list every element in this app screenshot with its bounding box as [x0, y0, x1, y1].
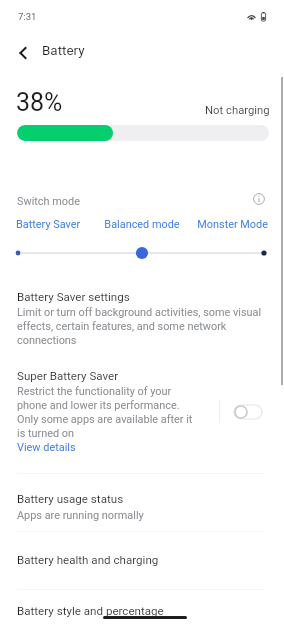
button[interactable]: Battery Saver settings — [0, 284, 284, 355]
staticText: Battery style and percentage — [17, 604, 164, 618]
staticText: Switch mode — [17, 195, 80, 208]
button[interactable]: Battery usage status — [0, 486, 284, 530]
button[interactable]: Battery Saver — [16, 218, 100, 231]
staticText: 38% — [16, 88, 63, 117]
button[interactable]: View details — [17, 441, 76, 454]
button[interactable]: Balanced mode — [100, 218, 184, 231]
staticText: Apps are running normally — [17, 509, 144, 522]
staticText: Restrict the functionality of your phone… — [17, 385, 201, 440]
staticText: 7:31 — [18, 11, 37, 22]
staticText: Battery usage status — [17, 492, 124, 506]
staticText: Limit or turn off background activities,… — [17, 306, 262, 347]
button[interactable]: Battery style and percentage — [0, 598, 284, 626]
button[interactable]: Battery health and charging — [0, 547, 284, 575]
staticText: Battery — [42, 43, 85, 59]
button[interactable]: Super Battery Saver — [17, 369, 201, 454]
button[interactable]: Super Battery Saver toggle, off — [234, 405, 262, 419]
button[interactable]: Battery mode slider — [14, 245, 270, 261]
staticText: Battery health and charging — [17, 553, 159, 567]
button[interactable]: Info about modes — [250, 190, 268, 208]
button[interactable]: Back — [7, 37, 39, 69]
staticText: Not charging — [205, 104, 270, 117]
button[interactable]: Monster Mode — [184, 218, 268, 231]
staticText: Battery Saver settings — [17, 290, 130, 304]
staticText: Super Battery Saver — [17, 369, 119, 383]
